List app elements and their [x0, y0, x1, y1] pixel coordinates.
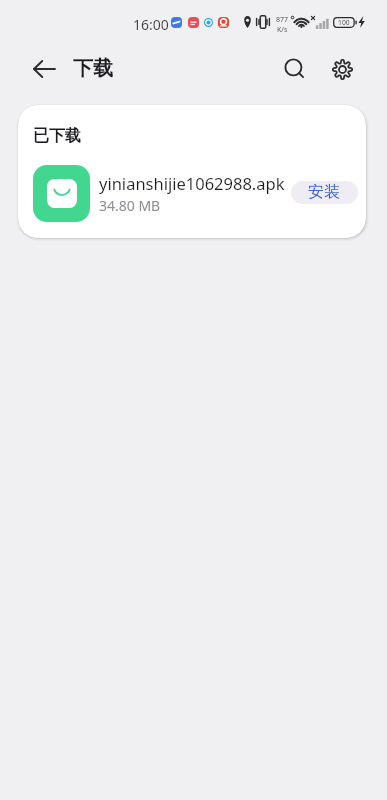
staticText: K/s [277, 25, 288, 35]
staticText: 下载 [73, 56, 113, 81]
button[interactable]: 安装 [291, 181, 358, 204]
staticText: yinianshijie1062988.apk [99, 172, 285, 194]
staticText: 16:00 [133, 15, 169, 34]
staticText: 877 [276, 15, 289, 25]
button[interactable]: yinianshijie1062988.apk [18, 157, 366, 227]
button[interactable]: Back [22, 56, 66, 81]
staticText: 34.80 MB [99, 196, 161, 215]
button[interactable]: Settings [328, 55, 356, 83]
staticText: 已下载 [33, 126, 81, 146]
staticText: 安装 [308, 182, 340, 202]
staticText: 100 [338, 18, 350, 27]
button[interactable]: Search [281, 55, 309, 83]
